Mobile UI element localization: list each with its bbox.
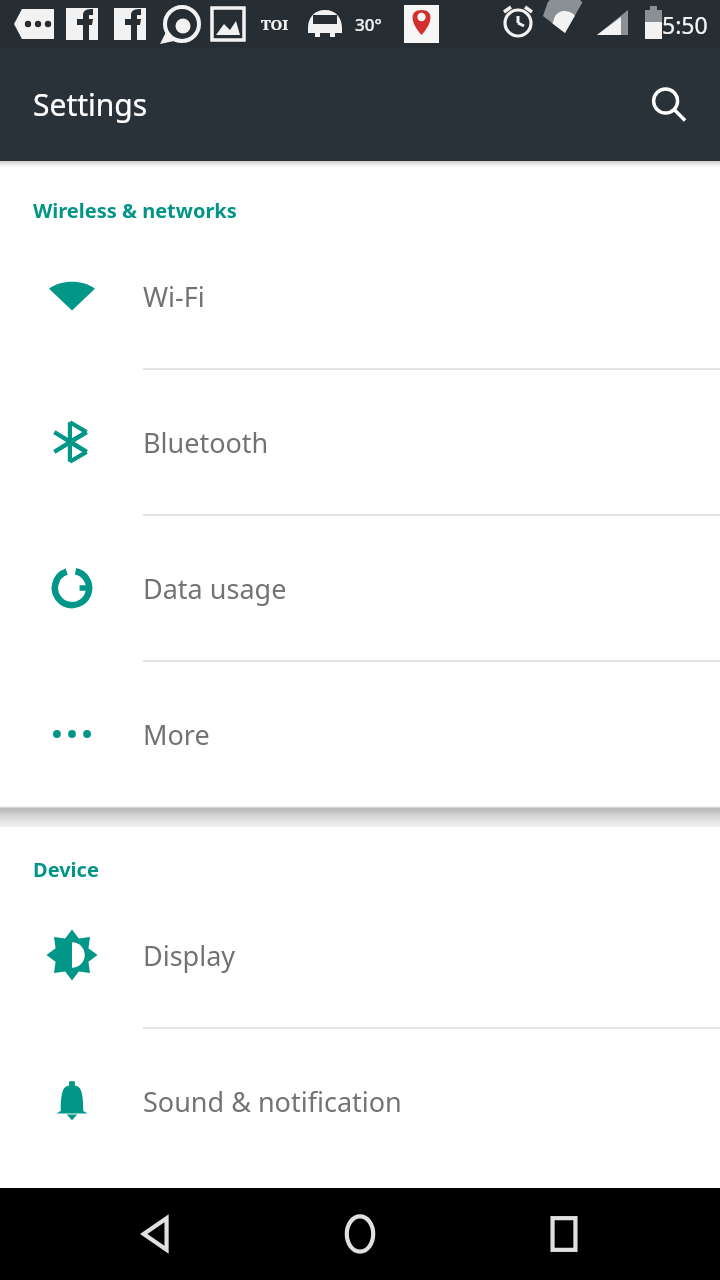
staticText: TOI xyxy=(261,14,289,34)
staticText: Wi-Fi xyxy=(143,278,205,315)
staticText: Sound & notification xyxy=(143,1083,402,1120)
button[interactable]: Back xyxy=(108,1188,204,1280)
button[interactable]: Display xyxy=(0,883,720,1027)
staticText: Data usage xyxy=(143,570,287,607)
button[interactable]: Search xyxy=(640,77,696,133)
button[interactable]: Sound & notification xyxy=(0,1029,720,1173)
button[interactable]: Home xyxy=(312,1188,408,1280)
staticText: Settings xyxy=(33,84,148,125)
button[interactable]: Data usage xyxy=(0,516,720,660)
staticText: Bluetooth xyxy=(143,424,269,461)
staticText: Display xyxy=(143,937,236,974)
staticText: More xyxy=(143,716,210,753)
staticText: Wireless & networks xyxy=(33,197,237,224)
button[interactable]: Recent apps xyxy=(516,1188,612,1280)
button[interactable]: More xyxy=(0,662,720,806)
staticText: 30° xyxy=(355,13,382,36)
staticText: 5:50 xyxy=(662,9,708,40)
staticText: Device xyxy=(33,856,99,883)
button[interactable]: Wi-Fi xyxy=(0,224,720,368)
button[interactable]: Bluetooth xyxy=(0,370,720,514)
